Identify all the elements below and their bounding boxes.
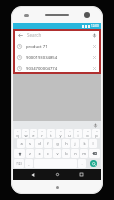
staticText: h bbox=[65, 141, 68, 146]
button[interactable]: Voice search bbox=[90, 31, 98, 39]
button[interactable]: v bbox=[53, 149, 61, 158]
staticText: m bbox=[82, 151, 86, 156]
button[interactable]: Recents bbox=[77, 170, 86, 179]
staticText: w bbox=[24, 133, 28, 138]
button[interactable]: j bbox=[71, 139, 79, 148]
staticText: b bbox=[65, 151, 68, 156]
staticText: 5 bbox=[50, 130, 52, 133]
button[interactable]: , bbox=[25, 159, 33, 168]
staticText: e bbox=[32, 133, 35, 138]
button[interactable]: 9000193034854 bbox=[13, 52, 101, 63]
staticText: t bbox=[50, 133, 52, 138]
staticText: a bbox=[20, 141, 23, 146]
button[interactable]: g bbox=[53, 139, 61, 148]
button[interactable]: h bbox=[62, 139, 70, 148]
staticText: u bbox=[68, 133, 71, 138]
button[interactable]: Key bbox=[89, 149, 100, 158]
button[interactable]: Key bbox=[14, 149, 25, 158]
staticText: g bbox=[56, 141, 59, 146]
button[interactable]: product 71 bbox=[13, 41, 101, 52]
button[interactable]: 6 bbox=[56, 129, 64, 138]
button[interactable]: Remove 9000193034854 bbox=[91, 54, 98, 61]
button[interactable]: ?123 bbox=[14, 159, 24, 168]
staticText: q bbox=[16, 133, 19, 138]
staticText: z bbox=[29, 151, 31, 156]
staticText: f bbox=[47, 141, 49, 146]
staticText: 1 bbox=[17, 130, 19, 133]
button[interactable]: m bbox=[80, 149, 88, 158]
staticText: x bbox=[38, 151, 41, 156]
button[interactable]: 9 bbox=[83, 129, 91, 138]
staticText: 9034700004774 bbox=[26, 66, 58, 72]
staticText: Search bbox=[27, 32, 42, 38]
button[interactable]: Remove 9034700004774 bbox=[91, 65, 98, 72]
staticText: 7 bbox=[69, 130, 71, 133]
button[interactable]: c bbox=[44, 149, 52, 158]
button[interactable]: Search bbox=[90, 160, 97, 167]
button[interactable]: 0 bbox=[92, 129, 100, 138]
button[interactable]: 1 bbox=[14, 129, 21, 138]
staticText: o bbox=[86, 133, 89, 138]
button[interactable]: d bbox=[35, 139, 43, 148]
staticText: v bbox=[56, 151, 59, 156]
staticText: 8 bbox=[77, 130, 79, 133]
staticText: 2 bbox=[25, 130, 27, 133]
button[interactable]: f bbox=[44, 139, 52, 148]
staticText: l bbox=[92, 141, 94, 146]
staticText: y bbox=[59, 133, 62, 138]
button[interactable]: b bbox=[62, 149, 70, 158]
staticText: . bbox=[81, 161, 83, 166]
button[interactable]: k bbox=[80, 139, 88, 148]
button[interactable]: l bbox=[89, 139, 97, 148]
staticText: d bbox=[38, 141, 41, 146]
button[interactable]: 5 bbox=[47, 129, 55, 138]
button[interactable]: s bbox=[26, 139, 34, 148]
button[interactable]: Home bbox=[53, 170, 62, 179]
staticText: 3 bbox=[33, 130, 35, 133]
button[interactable]: z bbox=[26, 149, 34, 158]
staticText: 0 bbox=[96, 130, 98, 133]
button[interactable]: n bbox=[71, 149, 79, 158]
button[interactable]: 4 bbox=[38, 129, 46, 138]
button[interactable]: a bbox=[17, 139, 25, 148]
button[interactable]: Back bbox=[16, 31, 24, 39]
button[interactable]: Remove product 71 bbox=[91, 43, 98, 50]
staticText: k bbox=[83, 141, 86, 146]
staticText: , bbox=[28, 161, 30, 166]
staticText: n bbox=[74, 151, 77, 156]
staticText: ?123 bbox=[16, 162, 22, 166]
staticText: 6 bbox=[60, 130, 62, 133]
staticText: s bbox=[29, 141, 31, 146]
button[interactable]: 2 bbox=[22, 129, 29, 138]
button[interactable]: Back bbox=[28, 170, 37, 179]
button[interactable]: Back bbox=[13, 29, 101, 41]
button[interactable]: Voice input bbox=[93, 123, 98, 128]
staticText: product 71 bbox=[26, 44, 48, 50]
button[interactable]: x bbox=[35, 149, 43, 158]
staticText: 12:00 bbox=[91, 24, 99, 28]
staticText: 4 bbox=[41, 130, 43, 133]
staticText: c bbox=[47, 151, 49, 156]
button[interactable]: 9034700004774 bbox=[13, 63, 101, 74]
staticText: p bbox=[95, 133, 98, 138]
staticText: r bbox=[41, 133, 43, 138]
staticText: 9 bbox=[87, 130, 89, 133]
button[interactable]: 7 bbox=[65, 129, 73, 138]
staticText: j bbox=[74, 141, 76, 146]
staticText: 9000193034854 bbox=[26, 55, 58, 61]
button[interactable]: 3 bbox=[30, 129, 37, 138]
button[interactable]: 8 bbox=[74, 129, 82, 138]
staticText: i bbox=[77, 133, 79, 138]
